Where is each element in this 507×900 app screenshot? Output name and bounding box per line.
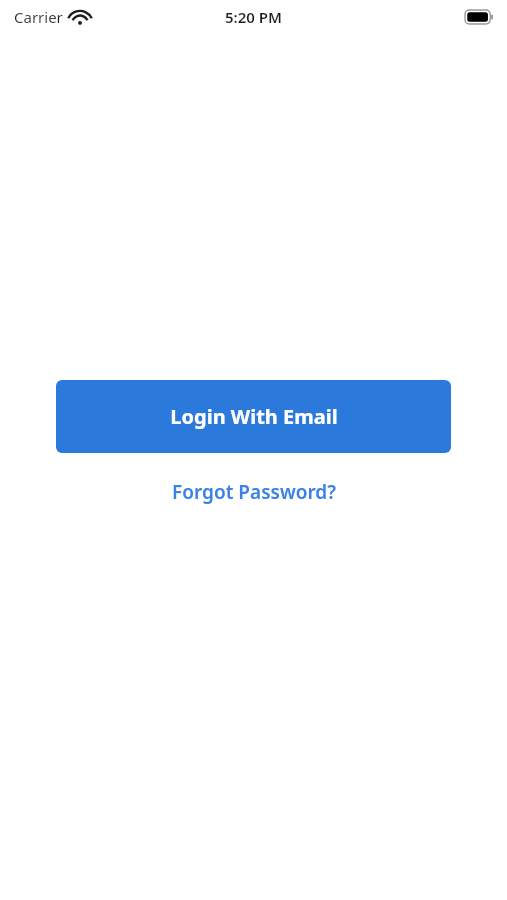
staticText: Carrier	[14, 7, 63, 27]
staticText: Forgot Password?	[172, 479, 336, 505]
button[interactable]: Forgot Password?	[162, 475, 346, 509]
staticText: 5:20 PM	[225, 7, 282, 27]
other: Wi-Fi signal	[70, 10, 90, 25]
staticText: Login With Email	[170, 403, 338, 430]
other: Battery full	[465, 10, 493, 24]
button[interactable]: Login With Email	[56, 380, 451, 453]
